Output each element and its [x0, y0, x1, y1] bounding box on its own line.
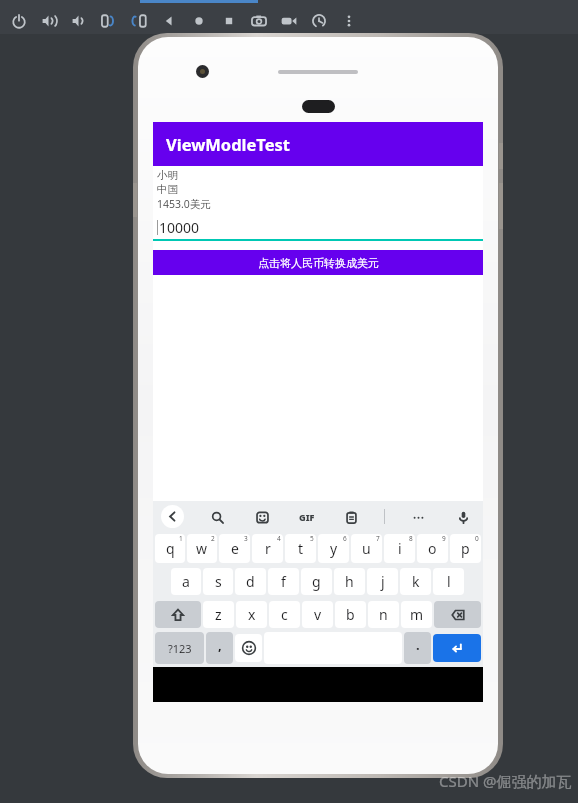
button[interactable]: Search [205, 505, 229, 529]
staticText: c [281, 605, 288, 624]
staticText: 5 [310, 534, 314, 543]
button[interactable]: v [302, 601, 333, 628]
staticText: 10000 [159, 218, 200, 237]
button[interactable]: Back [161, 505, 184, 528]
staticText: s [215, 572, 222, 591]
staticText: f [281, 572, 286, 591]
staticText: k [412, 572, 420, 591]
button[interactable]: n [368, 601, 399, 628]
button[interactable]: z [203, 601, 234, 628]
button[interactable]: ?123 [155, 632, 204, 664]
staticText: , [218, 636, 222, 654]
button[interactable]: a [171, 568, 201, 595]
button[interactable]: GIF [295, 505, 319, 529]
button[interactable]: w [187, 534, 217, 563]
button[interactable]: Volume down [64, 8, 94, 34]
staticText: 3 [244, 534, 248, 543]
button[interactable]: Back [154, 8, 184, 34]
staticText: g [312, 572, 321, 591]
staticText: d [246, 572, 255, 591]
button[interactable]: Enter [433, 634, 481, 662]
staticText: v [314, 605, 322, 624]
button[interactable]: t [285, 534, 316, 563]
staticText: 点击将人民币转换成美元 [258, 256, 379, 270]
staticText: w [196, 539, 208, 558]
button[interactable]: Shift [155, 601, 201, 628]
button[interactable]: Rotate left [94, 8, 124, 34]
button[interactable]: Volume up [34, 8, 64, 34]
staticText: 6 [343, 534, 347, 543]
button[interactable]: 10000 [153, 216, 483, 241]
button[interactable]: x [236, 601, 267, 628]
staticText: 0 [475, 534, 479, 543]
button[interactable]: Overview [214, 8, 244, 34]
staticText: l [447, 572, 451, 591]
button[interactable]: k [400, 568, 431, 595]
button[interactable]: Rotate right [124, 8, 154, 34]
staticText: ViewModleTest [166, 133, 291, 155]
button[interactable]: o [417, 534, 448, 563]
staticText: 8 [409, 534, 413, 543]
staticText: p [461, 539, 470, 558]
button[interactable]: Record [274, 8, 304, 34]
button[interactable]: ViewModleTest [153, 122, 483, 166]
button[interactable]: Backspace [434, 601, 481, 628]
button[interactable]: 点击将人民币转换成美元 [153, 250, 483, 275]
staticText: x [248, 605, 256, 624]
button[interactable]: , [206, 632, 233, 664]
button[interactable]: Stickers [250, 505, 274, 529]
button[interactable]: Emoji [235, 634, 262, 662]
staticText: m [410, 605, 424, 624]
button[interactable]: c [269, 601, 300, 628]
staticText: 7 [376, 534, 380, 543]
button[interactable]: Power [4, 8, 34, 34]
staticText: 2 [211, 534, 215, 543]
staticText: q [166, 539, 175, 558]
staticText: 1 [179, 534, 183, 543]
staticText: y [330, 539, 338, 558]
button[interactable]: l [433, 568, 464, 595]
button[interactable]: b [335, 601, 366, 628]
button[interactable]: s [203, 568, 233, 595]
button[interactable]: e [219, 534, 250, 563]
button[interactable]: g [301, 568, 332, 595]
staticText: 9 [442, 534, 446, 543]
button[interactable]: m [401, 601, 432, 628]
staticText: e [231, 539, 239, 558]
staticText: j [381, 572, 385, 591]
button[interactable]: f [268, 568, 299, 595]
button[interactable]: Clipboard [339, 505, 363, 529]
staticText: 小明 [157, 169, 178, 182]
button[interactable]: q [155, 534, 185, 563]
button[interactable]: Voice input [451, 505, 475, 529]
button[interactable]: Screenshot [244, 8, 274, 34]
staticText: t [298, 539, 304, 558]
staticText: 4 [277, 534, 281, 543]
button[interactable]: d [235, 568, 266, 595]
staticText: z [215, 605, 222, 624]
button[interactable]: h [334, 568, 365, 595]
button[interactable]: j [367, 568, 398, 595]
staticText: o [428, 539, 437, 558]
staticText: 1453.0美元 [157, 197, 211, 211]
staticText: a [182, 572, 190, 591]
button[interactable]: Home [184, 8, 214, 34]
staticText: GIF [299, 511, 315, 523]
button[interactable]: More options [406, 505, 430, 529]
button[interactable]: History [304, 8, 334, 34]
button[interactable]: u [351, 534, 382, 563]
button[interactable]: r [252, 534, 283, 563]
staticText: n [379, 605, 388, 624]
button[interactable]: y [318, 534, 349, 563]
button[interactable]: . [404, 632, 431, 664]
staticText: 中国 [157, 183, 178, 196]
staticText: h [345, 572, 354, 591]
button[interactable]: i [384, 534, 415, 563]
staticText: CSDN @倔强的加瓦 [439, 771, 572, 791]
staticText: ?123 [168, 641, 192, 656]
staticText: b [346, 605, 355, 624]
staticText: . [416, 636, 420, 654]
button[interactable]: p [450, 534, 481, 563]
button[interactable]: More [334, 8, 364, 34]
